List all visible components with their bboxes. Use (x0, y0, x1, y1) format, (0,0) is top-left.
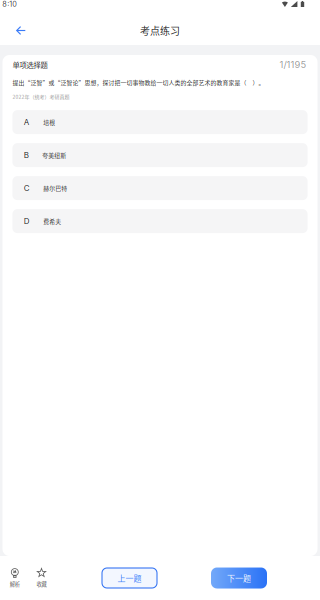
button[interactable]: 解析 (4, 568, 26, 588)
button[interactable]: 收藏 (30, 568, 52, 588)
staticText: 收藏 (36, 580, 46, 588)
staticText: 赫尔巴特 (43, 184, 67, 192)
staticText: 上一题 (117, 572, 141, 584)
button[interactable]: 下一题 (211, 567, 267, 588)
staticText: 提出“泛智”或“泛智论”思想，探讨把一切事物教给一切人类的全部艺术的教育家是（ … (12, 78, 264, 87)
staticText: 解析 (10, 580, 20, 588)
button[interactable]: 返回 (0, 17, 37, 44)
staticText: B (24, 150, 29, 160)
staticText: 2022年（统考）考研真题 (12, 93, 69, 100)
staticText: D (24, 216, 30, 226)
button[interactable]: A (12, 110, 308, 134)
staticText: A (24, 117, 30, 127)
staticText: 培根 (43, 118, 55, 126)
button[interactable]: C (12, 176, 308, 200)
staticText: C (24, 183, 30, 193)
staticText: 考点练习 (140, 23, 180, 38)
staticText: 下一题 (227, 572, 251, 584)
staticText: 夸美纽斯 (42, 151, 66, 159)
staticText: 单项选择题 (12, 59, 47, 70)
button[interactable]: 上一题 (102, 568, 157, 588)
button[interactable]: B (12, 143, 308, 167)
button[interactable]: D (12, 209, 308, 233)
staticText: 8:10 (2, 0, 17, 9)
staticText: 1/1195 (279, 59, 306, 70)
staticText: 费希夫 (43, 217, 61, 225)
